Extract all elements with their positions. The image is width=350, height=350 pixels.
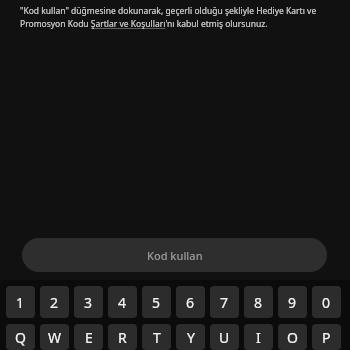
staticText: U <box>219 328 230 347</box>
staticText: W <box>48 328 62 347</box>
button[interactable]: I <box>244 324 273 350</box>
button[interactable]: 4 <box>108 286 137 318</box>
staticText: 2 <box>50 293 59 312</box>
staticText: Q <box>15 328 26 347</box>
button[interactable]: 7 <box>210 286 239 318</box>
staticText: T <box>153 328 161 347</box>
button[interactable]: Y <box>176 324 205 350</box>
staticText: P <box>322 328 331 347</box>
staticText: 5 <box>152 293 161 312</box>
staticText: 4 <box>118 293 127 312</box>
staticText: 9 <box>288 293 297 312</box>
button[interactable]: 9 <box>278 286 307 318</box>
button[interactable]: E <box>74 324 103 350</box>
button[interactable]: U <box>210 324 239 350</box>
button[interactable]: W <box>40 324 69 350</box>
staticText: 3 <box>84 293 93 312</box>
button[interactable]: P <box>312 324 341 350</box>
button[interactable]: 0 <box>312 286 341 318</box>
button[interactable]: 2 <box>40 286 69 318</box>
staticText: 0 <box>322 293 331 312</box>
button[interactable]: R <box>108 324 137 350</box>
staticText: 1 <box>16 293 25 312</box>
button[interactable]: O <box>278 324 307 350</box>
staticText: "Kod kullan" düğmesine dokunarak, geçerl… <box>20 5 336 30</box>
staticText: 7 <box>220 293 229 312</box>
staticText: 6 <box>186 293 195 312</box>
staticText: I <box>256 328 261 347</box>
staticText: 8 <box>254 293 263 312</box>
button[interactable]: 3 <box>74 286 103 318</box>
button[interactable]: 6 <box>176 286 205 318</box>
button[interactable]: 8 <box>244 286 273 318</box>
button[interactable]: Q <box>6 324 35 350</box>
staticText: O <box>287 328 298 347</box>
button[interactable]: T <box>142 324 171 350</box>
button[interactable]: Kod kullan <box>22 238 327 272</box>
staticText: Y <box>187 328 195 347</box>
staticText: Kod kullan <box>147 248 203 263</box>
staticText: R <box>118 328 127 347</box>
button[interactable]: 1 <box>6 286 35 318</box>
button[interactable]: 5 <box>142 286 171 318</box>
staticText: E <box>85 328 93 347</box>
